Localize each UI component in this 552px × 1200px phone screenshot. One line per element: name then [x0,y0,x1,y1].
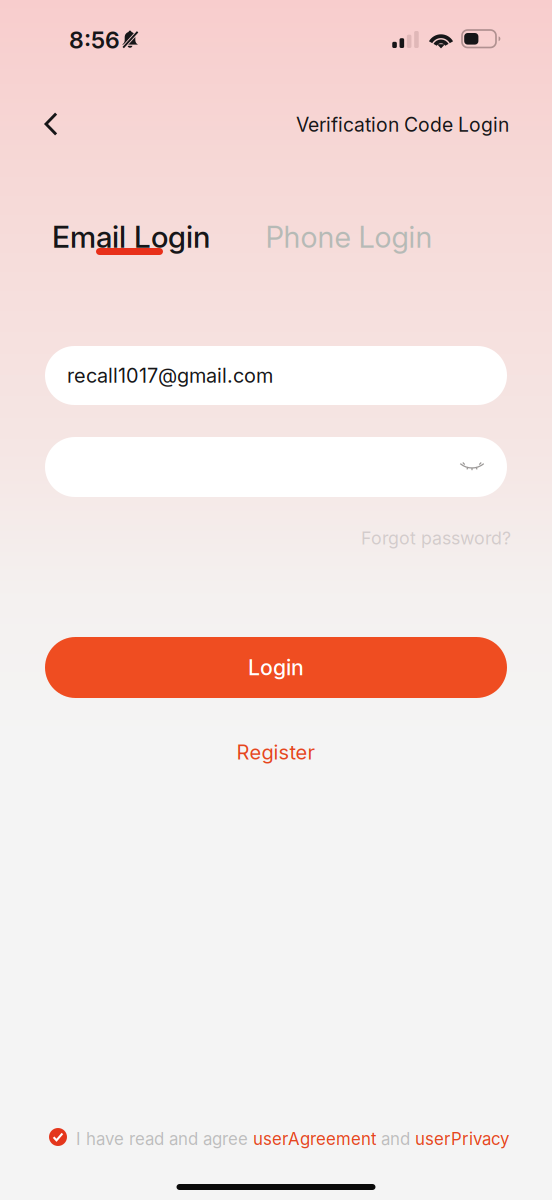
staticText: and [376,1129,415,1149]
staticText: 8:56 [69,26,120,54]
staticText: recall1017@gmail.com [67,363,273,387]
button[interactable]: Show password [450,445,494,489]
staticText: Phone Login [265,219,432,255]
staticText: Email Login [52,219,210,255]
staticText: userAgreement [253,1129,376,1149]
staticText: userPrivacy [415,1129,509,1149]
staticText: Forgot password? [361,527,511,549]
button[interactable]: Email Login [51,217,211,257]
staticText: Login [248,655,304,680]
button[interactable]: userAgreement [253,1129,376,1149]
button[interactable]: Phone Login [264,217,434,257]
staticText: Register [236,740,315,764]
button[interactable]: Register [226,730,325,774]
button[interactable]: Agree to terms [43,1122,73,1152]
button[interactable]: Back [25,98,77,150]
staticText: I have read and agree [76,1129,253,1149]
button[interactable]: Login [45,637,507,698]
staticText: Verification Code Login [296,113,509,136]
button[interactable]: userPrivacy [415,1129,509,1149]
button[interactable]: Forgot password? [348,517,524,559]
